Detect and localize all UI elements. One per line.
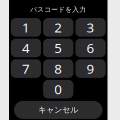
staticText: 9	[86, 60, 94, 77]
staticText: 1	[22, 18, 30, 36]
staticText: キャンセル	[38, 105, 78, 115]
button[interactable]: 1	[11, 18, 41, 37]
staticText: 4	[22, 39, 30, 57]
staticText: 0	[54, 80, 62, 98]
staticText: 5	[54, 39, 62, 57]
button[interactable]: 3	[75, 18, 106, 37]
staticText: 2	[54, 18, 62, 36]
button[interactable]: 8	[43, 59, 73, 78]
button[interactable]: キャンセル	[14, 101, 102, 119]
staticText: 8	[54, 60, 62, 77]
button[interactable]: 4	[11, 39, 41, 57]
button[interactable]: 6	[75, 39, 106, 57]
staticText: パスコードを入力	[30, 5, 86, 14]
button[interactable]: 9	[75, 59, 106, 78]
staticText: 7	[22, 60, 30, 77]
button[interactable]: 7	[11, 59, 41, 78]
button[interactable]: 2	[43, 18, 73, 37]
staticText: 6	[86, 39, 94, 57]
button[interactable]: 5	[43, 39, 73, 57]
button[interactable]: 0	[43, 80, 73, 98]
staticText: 3	[86, 18, 94, 36]
